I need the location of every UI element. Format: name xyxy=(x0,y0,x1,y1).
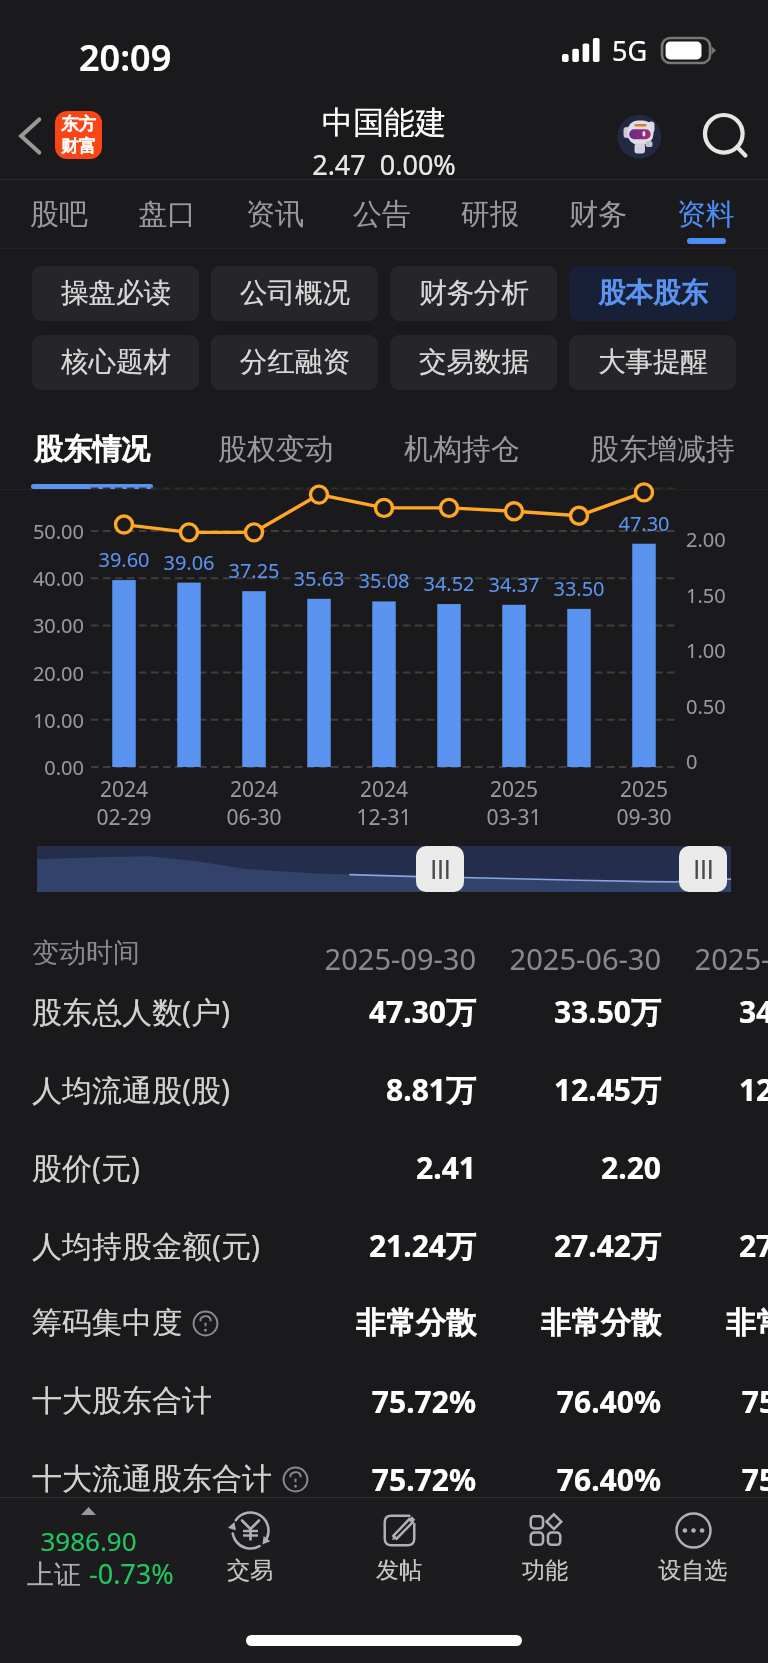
staticText: 5G xyxy=(612,32,648,69)
button[interactable]: East Money logo xyxy=(55,111,102,159)
staticText: 2.00 xyxy=(686,526,726,553)
staticText: 设自选 xyxy=(633,1556,753,1585)
staticText: 75.72% xyxy=(236,1381,476,1422)
button[interactable]: 股价(元) xyxy=(0,1128,768,1206)
staticText: 股权变动 xyxy=(218,431,334,468)
button[interactable]: 发帖 xyxy=(339,1500,459,1596)
button[interactable]: 分红融资 xyxy=(211,335,378,390)
staticText: 27.18万 xyxy=(606,1225,768,1266)
staticText: 十大股东合计 xyxy=(32,1382,212,1420)
button[interactable]: 股本股东 xyxy=(569,266,736,321)
button[interactable]: 操盘必读 xyxy=(32,266,199,321)
staticText: 37.25 xyxy=(209,557,299,584)
button[interactable]: 人均持股金额(元) xyxy=(0,1206,768,1284)
staticText: 筹码集中度 xyxy=(32,1304,182,1342)
staticText: 十大流通股东合计 xyxy=(32,1460,272,1498)
staticText: 47.30万 xyxy=(236,991,476,1032)
button[interactable]: Range handle xyxy=(416,846,464,892)
staticText: 资料 xyxy=(677,196,735,233)
staticText: 75.96% xyxy=(606,1381,768,1422)
staticText: 人均流通股(股) xyxy=(32,1069,230,1110)
staticText: 交易 xyxy=(190,1556,310,1585)
button[interactable]: Range handle xyxy=(679,846,727,892)
staticText: 0 xyxy=(686,748,698,775)
staticText: 股东情况 xyxy=(34,431,150,468)
staticText: 2024 12-31 xyxy=(314,775,454,831)
button[interactable]: 资料 xyxy=(652,181,760,248)
staticText: 2024 06-30 xyxy=(184,775,324,831)
staticText: 分红融资 xyxy=(240,345,350,380)
staticText: 20:09 xyxy=(79,33,172,82)
button[interactable]: 资讯 xyxy=(221,181,329,248)
staticText: 21.24万 xyxy=(236,1225,476,1266)
button[interactable]: 研报 xyxy=(436,181,544,248)
staticText: 27.42万 xyxy=(421,1225,661,1266)
staticText: 2025 09-30 xyxy=(574,775,714,831)
staticText: 核心题材 xyxy=(61,345,171,380)
button[interactable]: 股权变动 xyxy=(180,412,372,488)
button[interactable]: 交易数据 xyxy=(390,335,557,390)
button[interactable]: AI assistant xyxy=(613,111,665,163)
staticText: 75.72% xyxy=(236,1459,476,1500)
staticText: 发帖 xyxy=(339,1556,459,1585)
staticText: 非常分散 xyxy=(606,1304,768,1342)
staticText: 2.41 xyxy=(236,1147,476,1188)
button[interactable]: 筹码集中度 xyxy=(0,1284,768,1362)
button[interactable]: 3986.90 xyxy=(0,1499,190,1597)
staticText: 2025 03-31 xyxy=(444,775,584,831)
button[interactable]: 大事提醒 xyxy=(569,335,736,390)
staticText: 8.81万 xyxy=(236,1069,476,1110)
staticText: 机构持仓 xyxy=(404,431,520,468)
button[interactable]: Back xyxy=(6,110,56,160)
staticText: 人均持股金额(元) xyxy=(32,1225,260,1266)
button[interactable]: 股东总人数(户) xyxy=(0,972,768,1050)
staticText: 2025-09-30 xyxy=(236,939,476,978)
button[interactable]: 功能 xyxy=(485,1500,605,1596)
staticText: 大事提醒 xyxy=(598,345,708,380)
button[interactable]: 机构持仓 xyxy=(366,412,558,488)
staticText: 75.96% xyxy=(606,1459,768,1500)
staticText: 财富 xyxy=(61,135,96,157)
staticText: 2025-03-31 xyxy=(606,939,768,978)
button[interactable]: 核心题材 xyxy=(32,335,199,390)
staticText: 1.50 xyxy=(686,582,726,609)
button[interactable]: 盘口 xyxy=(113,181,221,248)
staticText: 中国能建 xyxy=(0,103,768,142)
staticText: 2.25 xyxy=(606,1147,768,1188)
staticText: 33.50万 xyxy=(421,991,661,1032)
button[interactable]: 股东增减持 xyxy=(566,412,758,488)
staticText: 盘口 xyxy=(138,196,196,233)
button[interactable]: 设自选 xyxy=(633,1500,753,1596)
button[interactable]: 十大流通股东合计 xyxy=(0,1440,768,1518)
button[interactable]: 财务分析 xyxy=(390,266,557,321)
staticText: 2.20 xyxy=(421,1147,661,1188)
staticText: 交易数据 xyxy=(419,345,529,380)
staticText: 76.40% xyxy=(421,1459,661,1500)
staticText: 1.00 xyxy=(686,637,726,664)
button[interactable]: Search xyxy=(694,104,756,166)
staticText: 研报 xyxy=(461,196,519,233)
staticText: 0.50 xyxy=(686,693,726,720)
staticText: 上证 xyxy=(27,1555,89,1592)
button[interactable]: 股东情况 xyxy=(0,412,188,488)
staticText: 股东总人数(户) xyxy=(32,991,230,1032)
staticText: 公司概况 xyxy=(240,276,350,311)
button[interactable]: 财务 xyxy=(544,181,652,248)
staticText: 10.00 xyxy=(0,707,84,734)
staticText: 股价(元) xyxy=(32,1147,140,1188)
button[interactable]: 交易 xyxy=(190,1500,310,1596)
button[interactable]: 公司概况 xyxy=(211,266,378,321)
button[interactable]: 公告 xyxy=(328,181,436,248)
staticText: 33.50 xyxy=(534,575,624,602)
staticText: 资讯 xyxy=(246,196,304,233)
button[interactable]: 人均流通股(股) xyxy=(0,1050,768,1128)
staticText: 34.37万 xyxy=(606,991,768,1032)
staticText: 34.37 xyxy=(469,571,559,598)
staticText: 股本股东 xyxy=(598,276,708,311)
staticText: 财务 xyxy=(569,196,627,233)
staticText: 2.47 0.00% xyxy=(0,146,768,183)
button[interactable]: 十大股东合计 xyxy=(0,1362,768,1440)
button[interactable]: 股吧 xyxy=(5,181,113,248)
staticText: 股吧 xyxy=(30,196,88,233)
staticText: 20.00 xyxy=(0,660,84,687)
